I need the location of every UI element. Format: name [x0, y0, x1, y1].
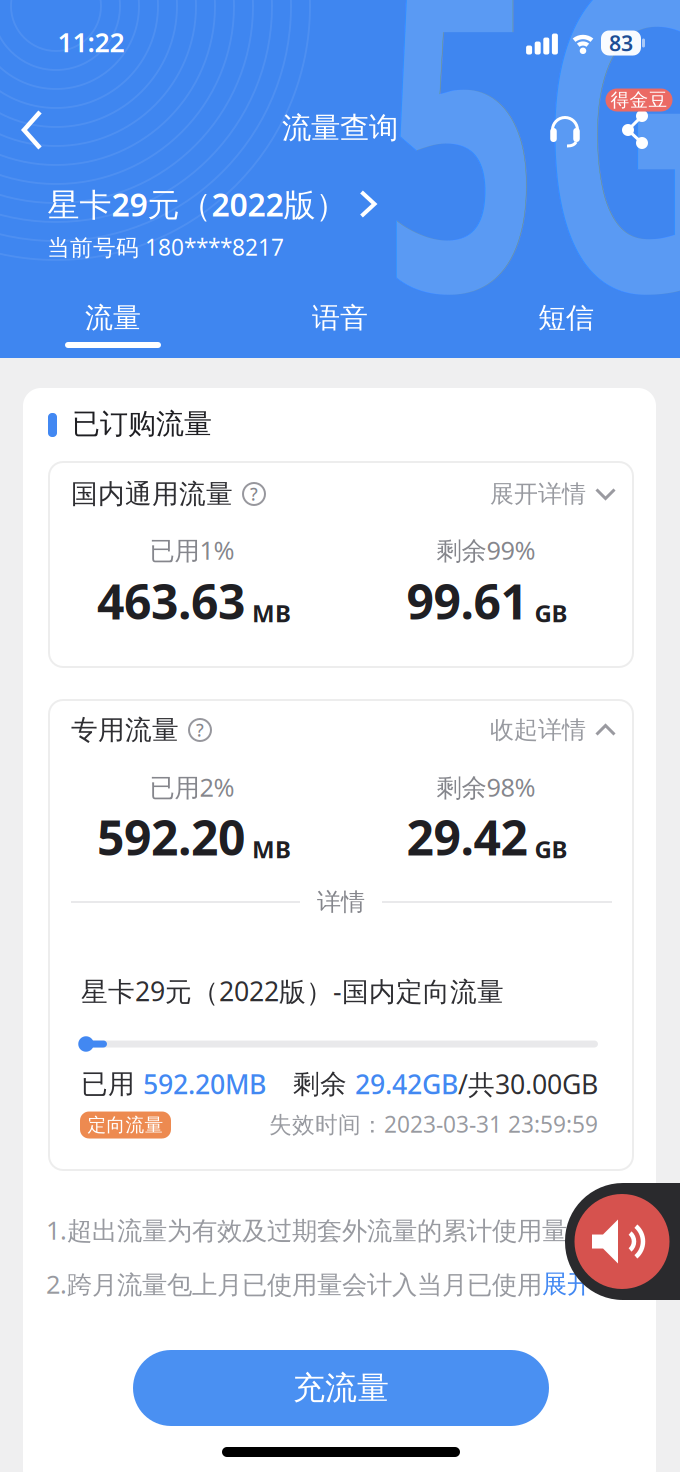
staticText: 国内通用流量	[71, 478, 233, 510]
staticText: 星卡29元（2022版）-国内定向流量	[81, 973, 504, 1009]
button[interactable]: 客服	[545, 109, 585, 149]
staticText: /共30.00GB	[458, 1066, 598, 1102]
button[interactable]: 得金豆	[605, 88, 672, 111]
button[interactable]: 语音播报	[565, 1183, 680, 1300]
staticText: 463.63	[97, 569, 245, 633]
button[interactable]: Back	[14, 108, 54, 152]
staticText: 当前号码 180****8217	[47, 232, 284, 262]
staticText: 592.20	[97, 805, 245, 869]
staticText: 充流量	[293, 1368, 389, 1408]
staticText: 已订购流量	[72, 407, 212, 441]
staticText: MB	[252, 597, 291, 629]
button[interactable]: 语音	[275, 296, 405, 340]
staticText: 短信	[538, 301, 594, 335]
staticText: 29.42	[406, 805, 527, 869]
button[interactable]: 分享	[620, 109, 660, 149]
button[interactable]: 充流量	[133, 1350, 549, 1426]
staticText: 1.超出流量为有效及过期套外流量的累计使用量	[46, 1213, 567, 1247]
button[interactable]: 收起详情	[490, 715, 616, 745]
staticText: 83	[609, 29, 633, 57]
staticText: 已用	[81, 1068, 143, 1100]
staticText: 流量查询	[282, 110, 398, 146]
staticText: 剩余	[293, 1068, 355, 1100]
staticText: 592.20MB	[143, 1066, 266, 1102]
staticText: 99.61	[406, 569, 527, 633]
staticText: ?	[250, 482, 258, 505]
staticText: 5G	[274, 0, 680, 412]
button[interactable]: 流量	[48, 296, 178, 340]
staticText: 专用流量	[71, 714, 179, 746]
staticText: 定向流量	[87, 1113, 163, 1136]
staticText: 剩余98%	[436, 770, 535, 804]
staticText: 详情	[317, 887, 365, 917]
staticText: 收起详情	[490, 715, 586, 745]
staticText: 已用2%	[149, 770, 234, 804]
staticText: 展开	[542, 1268, 592, 1299]
staticText: 2.跨月流量包上月已使用量会计入当月已使用	[46, 1267, 542, 1301]
staticText: 得金豆	[610, 88, 667, 111]
staticText: 语音	[312, 301, 368, 335]
staticText: MB	[252, 833, 291, 865]
button[interactable]: 星卡29元（2022版）	[47, 183, 376, 225]
staticText: 剩余99%	[436, 533, 535, 567]
staticText: 失效时间：2023-03-31 23:59:59	[269, 1109, 598, 1139]
button[interactable]: 展开详情	[490, 479, 616, 509]
staticText: 流量	[85, 301, 141, 335]
staticText: GB	[534, 597, 567, 629]
staticText: 29.42GB	[355, 1066, 458, 1102]
staticText: 星卡29元（2022版）	[47, 183, 347, 225]
button[interactable]: 短信	[501, 296, 631, 340]
staticText: ?	[196, 718, 204, 741]
staticText: 已用1%	[149, 533, 234, 567]
staticText: 11:22	[57, 24, 124, 60]
staticText: 展开详情	[490, 479, 586, 509]
staticText: GB	[534, 833, 567, 865]
